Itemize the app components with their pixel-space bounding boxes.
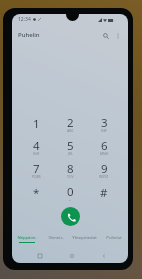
button[interactable]: More options — [112, 30, 124, 42]
staticText: WXYZ — [99, 174, 109, 179]
button[interactable]: Näppäim. — [12, 235, 41, 246]
staticText: DEF — [101, 128, 108, 133]
staticText: 3 — [101, 115, 108, 131]
staticText: 9 — [101, 161, 108, 177]
button[interactable]: 2 — [53, 112, 87, 135]
staticText: 6 — [101, 138, 108, 154]
staticText: + — [69, 197, 71, 202]
button[interactable]: 6 — [87, 135, 121, 158]
staticText: Viimeis. — [48, 235, 64, 241]
staticText: * — [33, 185, 40, 201]
staticText: 1 — [33, 116, 40, 132]
button[interactable]: 9 — [87, 158, 121, 181]
staticText: Näppäim. — [17, 235, 37, 241]
staticText: GHI — [33, 151, 40, 156]
staticText: Puhelut — [106, 235, 122, 241]
button[interactable]: Search — [99, 29, 112, 42]
staticText: # — [100, 185, 108, 201]
staticText: 5 — [67, 138, 74, 154]
button[interactable]: Call — [61, 207, 80, 226]
staticText: 7 — [33, 161, 40, 177]
button[interactable]: # — [87, 181, 121, 204]
button[interactable]: Viimeis. — [41, 235, 70, 246]
button[interactable]: Home — [67, 251, 77, 261]
button[interactable]: Back — [99, 251, 109, 261]
staticText: PQRS — [32, 174, 41, 179]
button[interactable]: Recents — [35, 251, 45, 261]
button[interactable]: 8 — [53, 158, 87, 181]
staticText: JKL — [68, 151, 73, 156]
button[interactable]: 3 — [87, 112, 121, 135]
staticText: 2 — [67, 115, 74, 131]
staticText: MNO — [100, 151, 109, 156]
button[interactable]: 1 — [19, 112, 53, 135]
staticText: TUV — [67, 174, 74, 179]
staticText: 4 — [33, 138, 40, 154]
button[interactable]: Puhelut — [99, 235, 128, 246]
staticText: Puhelin — [18, 31, 40, 39]
staticText: 12:34 — [18, 16, 31, 23]
staticText: 0 — [67, 184, 74, 200]
staticText: ABC — [67, 128, 74, 133]
button[interactable]: 0 — [53, 181, 87, 204]
staticText: 8 — [67, 161, 74, 177]
button[interactable]: 7 — [19, 158, 53, 181]
button[interactable]: Yhteystiedot — [70, 235, 99, 246]
staticText: Yhteystiedot — [72, 235, 97, 241]
button[interactable]: * — [19, 181, 53, 204]
button[interactable]: 5 — [53, 135, 87, 158]
button[interactable]: 4 — [19, 135, 53, 158]
